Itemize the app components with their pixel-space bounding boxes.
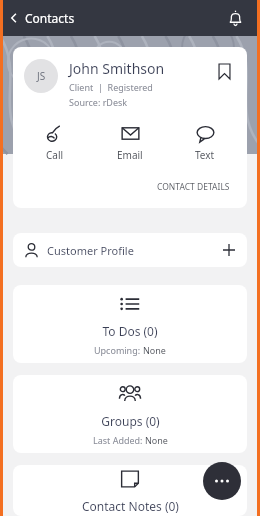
button[interactable]: Call xyxy=(37,122,72,164)
staticText: None xyxy=(143,344,166,356)
button[interactable]: To Dos (0) xyxy=(13,285,247,363)
button[interactable]: Groups (0) xyxy=(13,375,247,453)
staticText: John Smithson xyxy=(69,59,165,78)
button[interactable]: More options xyxy=(203,462,241,500)
staticText: Last Added: xyxy=(93,434,145,446)
button[interactable]: Text xyxy=(187,122,223,164)
staticText: None xyxy=(145,434,168,446)
button[interactable]: Customer Profile xyxy=(13,233,247,267)
staticText: Customer Profile xyxy=(47,243,134,258)
staticText: Email xyxy=(117,148,143,162)
staticText: Call xyxy=(46,148,64,162)
button[interactable]: Notifications xyxy=(224,7,246,29)
staticText: Client | Registered xyxy=(69,81,153,93)
staticText: Source: rDesk xyxy=(69,96,128,108)
staticText: Groups (0) xyxy=(101,413,160,429)
button[interactable]: Contact Notes (0) xyxy=(13,465,247,516)
staticText: CONTACT DETAILS xyxy=(157,181,230,193)
staticText: Upcoming: xyxy=(94,344,143,356)
button[interactable]: CONTACT DETAILS xyxy=(154,178,233,196)
button[interactable]: Back xyxy=(6,10,75,26)
button[interactable]: JS xyxy=(13,47,247,208)
staticText: To Dos (0) xyxy=(102,323,158,339)
button[interactable]: Email xyxy=(109,122,151,164)
staticText: Contact Notes (0) xyxy=(82,498,179,514)
button[interactable]: Bookmark xyxy=(212,59,236,83)
staticText: JS xyxy=(37,69,46,83)
staticText: Contacts xyxy=(25,10,75,26)
other: Back xyxy=(6,10,22,26)
staticText: Text xyxy=(195,148,215,162)
